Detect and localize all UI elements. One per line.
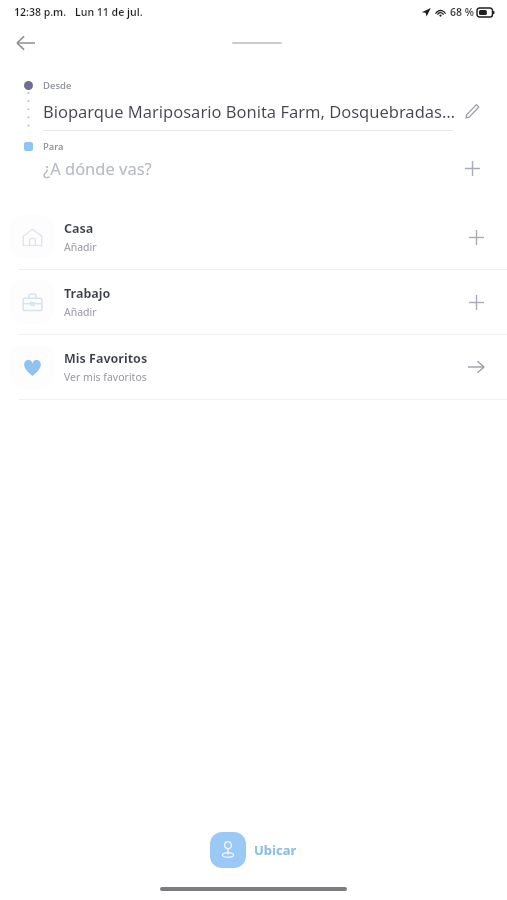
staticText: Lun 11 de jul. bbox=[75, 5, 143, 19]
button[interactable]: Back bbox=[8, 25, 44, 61]
staticText: 12:38 p.m. bbox=[14, 5, 67, 19]
button[interactable]: Bioparque Mariposario Bonita Farm, Dosqu… bbox=[43, 100, 457, 122]
button[interactable]: Añadir destino bbox=[457, 153, 487, 183]
staticText: Para bbox=[43, 140, 64, 153]
button[interactable]: Editar origen bbox=[457, 96, 487, 126]
staticText: Bioparque Mariposario Bonita Farm, Dosqu… bbox=[43, 100, 457, 122]
staticText: ¿A dónde vas? bbox=[43, 157, 152, 179]
staticText: Trabajo bbox=[64, 285, 111, 302]
staticText: Ubicar bbox=[254, 841, 297, 859]
staticText: Desde bbox=[43, 79, 72, 92]
staticText: Mis Favoritos bbox=[64, 350, 148, 367]
staticText: Casa bbox=[64, 220, 94, 237]
button[interactable]: ¿A dónde vas? bbox=[43, 153, 457, 183]
staticText: Añadir bbox=[64, 305, 97, 319]
staticText: 68 % bbox=[450, 5, 474, 19]
button[interactable]: Ubicar bbox=[206, 828, 301, 872]
staticText: Añadir bbox=[64, 240, 97, 254]
button[interactable]: Casa bbox=[0, 205, 507, 269]
staticText: Ver mis favoritos bbox=[64, 370, 147, 384]
button[interactable]: Trabajo bbox=[0, 270, 507, 334]
button[interactable]: Mis Favoritos bbox=[0, 335, 507, 399]
